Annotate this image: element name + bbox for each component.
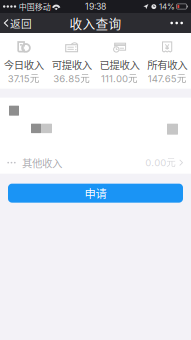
button[interactable]: 已提收入: [95, 33, 143, 89]
staticText: 可提收入: [52, 57, 92, 72]
button[interactable]: 所有收入: [143, 33, 191, 89]
staticText: 147.65元: [148, 73, 187, 85]
staticText: 14%: [159, 2, 175, 11]
staticText: 其他收入: [22, 155, 62, 170]
staticText: 中国移动: [19, 1, 51, 12]
button[interactable]: 申请: [8, 184, 183, 203]
staticText: 已提收入: [99, 57, 139, 72]
staticText: 返回: [10, 15, 32, 31]
staticText: 收入查询: [69, 14, 121, 32]
staticText: 所有收入: [147, 57, 187, 72]
button[interactable]: 其他收入: [0, 152, 191, 174]
staticText: 19:38: [85, 1, 106, 12]
button[interactable]: 可提收入: [48, 33, 96, 89]
button[interactable]: 返回: [0, 13, 38, 33]
button[interactable]: 今日收入: [0, 33, 48, 89]
staticText: 111.00元: [101, 73, 138, 85]
staticText: 今日收入: [4, 57, 44, 72]
staticText: 36.85元: [53, 73, 90, 85]
button[interactable]: More options: [162, 13, 191, 33]
staticText: 申请: [84, 185, 106, 201]
staticText: 0.00元: [145, 157, 176, 169]
staticText: 37.15元: [8, 73, 40, 85]
